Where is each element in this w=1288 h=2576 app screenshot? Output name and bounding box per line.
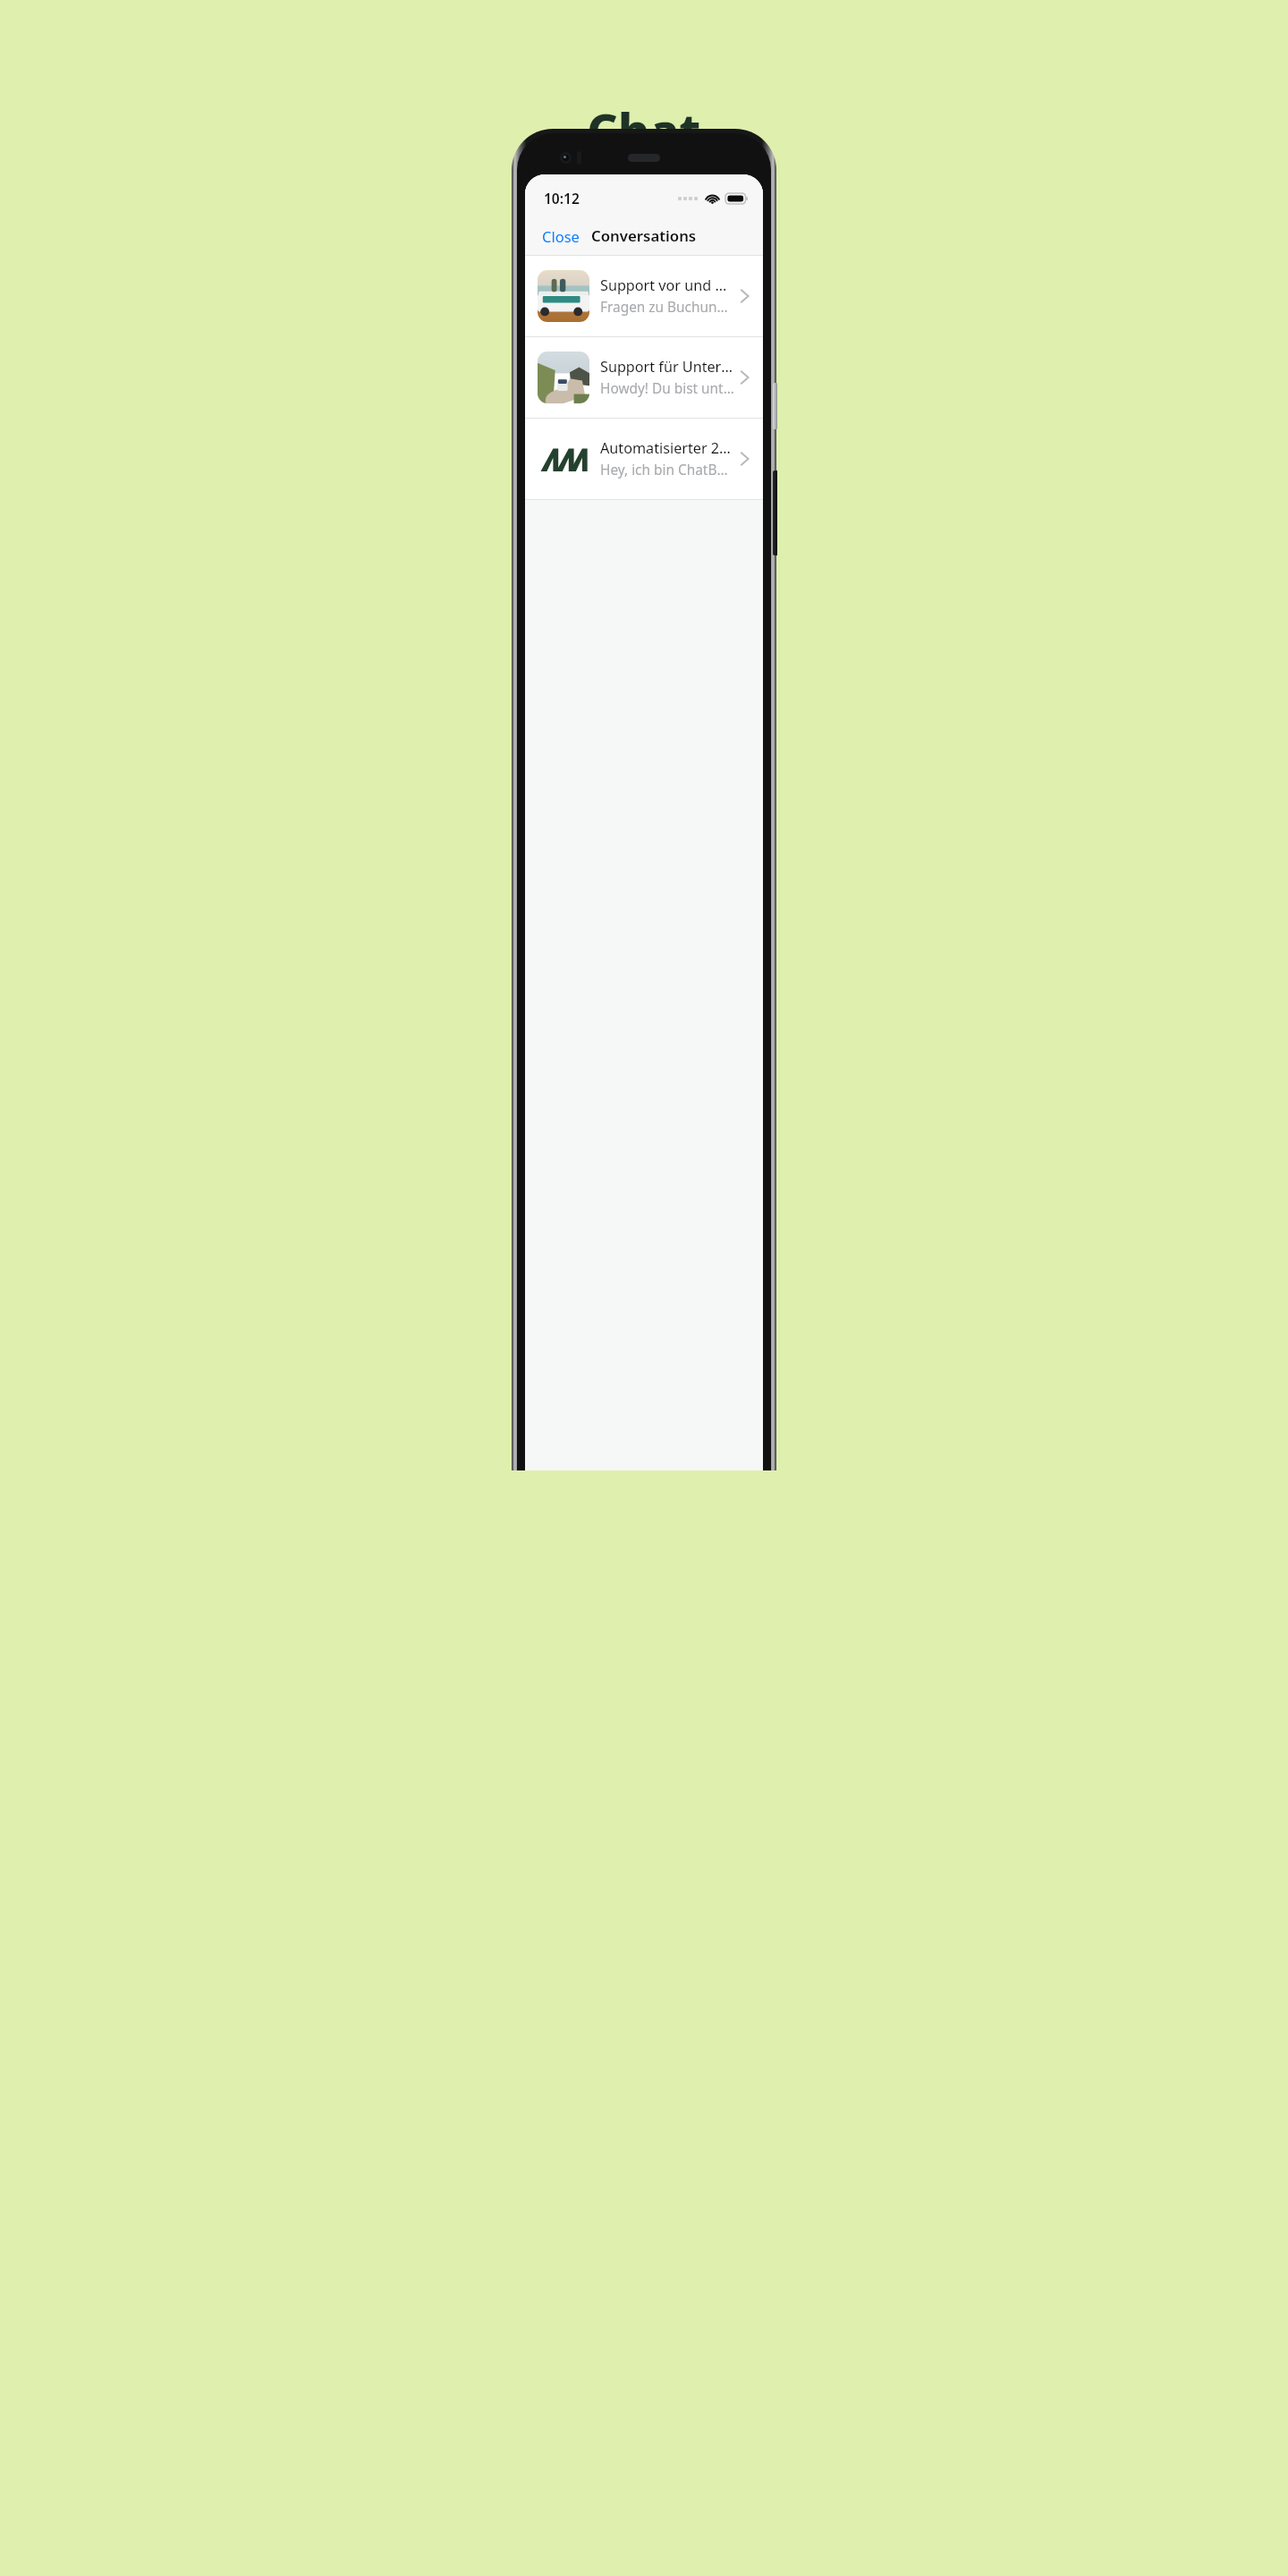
staticText: Support vor und nach der Reise bbox=[600, 275, 734, 295]
staticText: Conversations bbox=[591, 225, 697, 246]
other: Open conversation bbox=[740, 450, 750, 468]
staticText: Support für Unterwegs bbox=[600, 357, 734, 377]
staticText: Automatisierter 24/7 Support "Albi" bbox=[600, 438, 734, 458]
button[interactable]: Automatisierter 24/7 Support "Albi" bbox=[525, 419, 763, 499]
staticText: Fragen zu Buchung, Angeboten oder Sonsti… bbox=[600, 298, 734, 317]
button[interactable]: Close bbox=[525, 221, 590, 251]
button[interactable]: Support für Unterwegs bbox=[525, 337, 763, 418]
staticText: Hey, ich bin ChatBot Albi 🤖 und helfe Di… bbox=[600, 461, 734, 479]
staticText: Close bbox=[542, 226, 580, 246]
other: Open conversation bbox=[740, 369, 750, 386]
other: Open conversation bbox=[740, 287, 750, 305]
staticText: Howdy! Du bist unterwegs und etwas läuft… bbox=[600, 379, 734, 398]
staticText: 10:12 bbox=[544, 189, 580, 208]
staticText: Chat bbox=[587, 97, 701, 163]
button[interactable]: Support vor und nach der Reise bbox=[525, 256, 763, 336]
